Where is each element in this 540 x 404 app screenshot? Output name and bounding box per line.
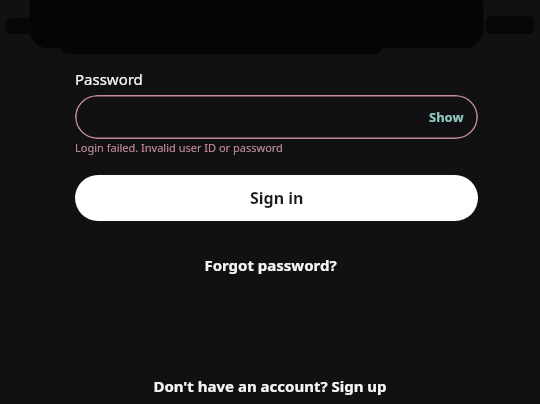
button[interactable]: Show [75,95,478,139]
button[interactable]: Sign in [75,175,478,221]
staticText: Forgot password? [204,255,337,275]
button[interactable]: Don't have an account? Sign up [141,371,399,401]
staticText: Don't have an account? Sign up [153,376,387,396]
staticText: Sign in [250,187,304,209]
staticText: Password [75,69,143,89]
staticText: Login failed. Invalid user ID or passwor… [75,140,283,155]
button[interactable]: Show [425,105,468,129]
button[interactable]: Forgot password? [192,250,349,280]
staticText: Show [429,108,464,126]
